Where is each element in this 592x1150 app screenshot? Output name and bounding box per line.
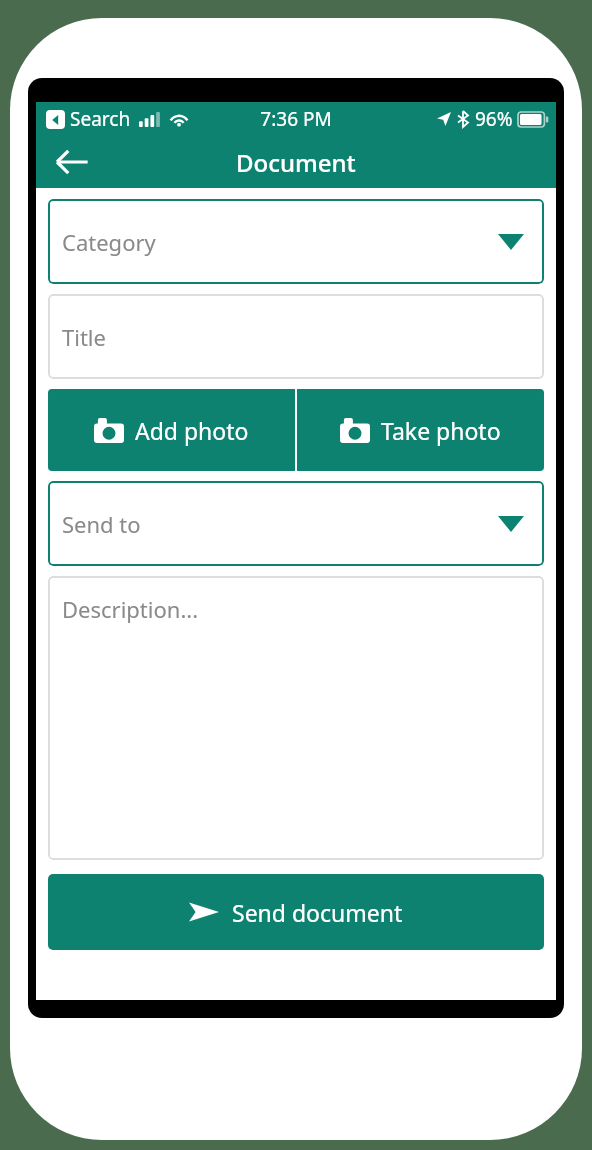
staticText: Send to <box>62 509 141 539</box>
staticText: Add photo <box>135 415 249 446</box>
staticText: Title <box>62 322 106 352</box>
button[interactable]: Title <box>48 294 544 379</box>
button[interactable]: Back <box>50 140 94 184</box>
button[interactable]: Send to <box>48 481 544 566</box>
staticText: Take photo <box>381 415 501 446</box>
button[interactable]: Back to Search <box>46 110 65 129</box>
staticText: 96% <box>475 106 513 132</box>
button[interactable]: Add photo <box>48 389 295 471</box>
staticText: Search <box>70 106 131 132</box>
staticText: Document <box>236 146 356 179</box>
button[interactable]: Category <box>48 199 544 284</box>
button[interactable]: Send document <box>48 874 544 950</box>
staticText: Send document <box>232 897 403 928</box>
button[interactable]: Description... <box>48 576 544 860</box>
staticText: Description... <box>62 594 199 624</box>
staticText: Category <box>62 227 156 257</box>
staticText: 7:36 PM <box>260 106 332 132</box>
button[interactable]: Take photo <box>297 389 544 471</box>
